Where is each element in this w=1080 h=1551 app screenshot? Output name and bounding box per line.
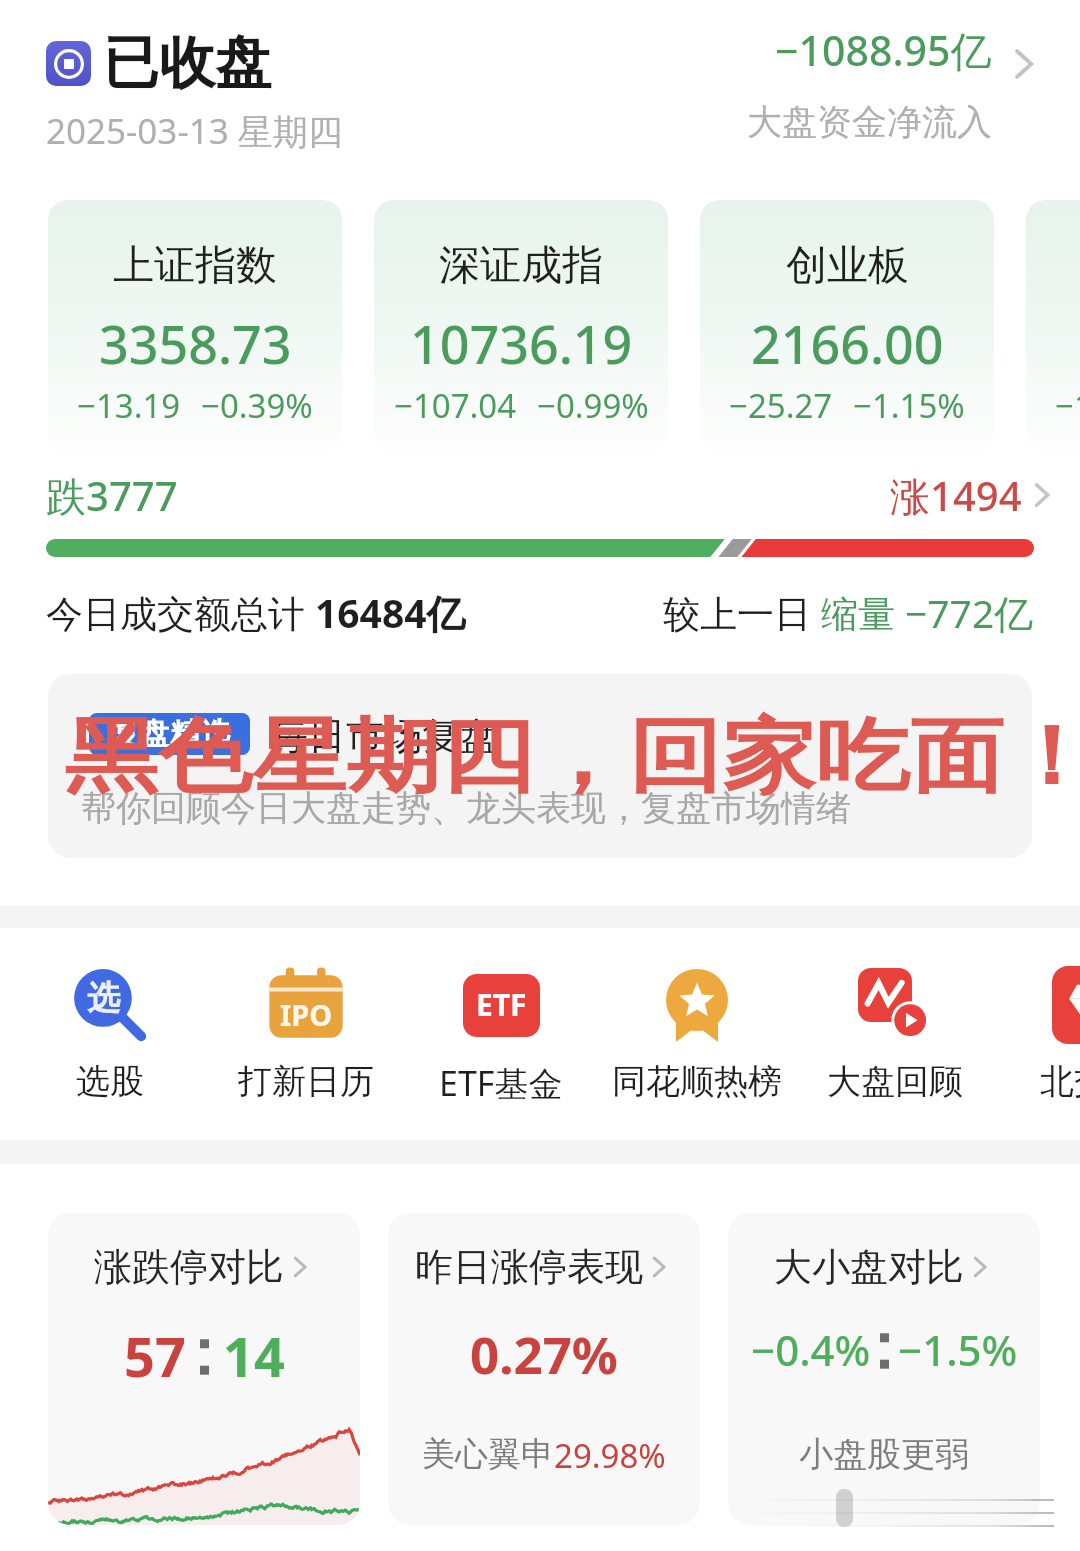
- staticText: ETF基金: [439, 1060, 563, 1106]
- staticText: 今日成交额总计: [46, 587, 315, 638]
- staticText: −772亿: [905, 586, 1034, 638]
- button[interactable]: 大盘回顾: [800, 928, 990, 1140]
- staticText: 已收盘: [103, 28, 271, 99]
- button[interactable]: 北交所: [996, 928, 1080, 1140]
- button[interactable]: 大小盘对比: [728, 1213, 1040, 1525]
- button[interactable]: 涨跌停对比: [48, 1213, 360, 1525]
- button[interactable]: IPO: [211, 928, 401, 1140]
- other: 查看大盘资金: [1004, 44, 1044, 84]
- staticText: −25.27: [729, 383, 833, 428]
- staticText: 创业板: [786, 240, 909, 292]
- staticText: 大盘回顾: [827, 1060, 963, 1103]
- staticText: 选股: [76, 1060, 144, 1103]
- staticText: 3358.73: [99, 308, 292, 379]
- button[interactable]: 创业板: [700, 200, 994, 453]
- staticText: 2166.00: [751, 308, 944, 379]
- button[interactable]: 上证指数: [48, 200, 342, 453]
- staticText: 复盘精选: [110, 715, 230, 753]
- staticText: 帮你回顾今日大盘走势、龙头表现，复盘市场情绪: [81, 786, 851, 830]
- staticText: 上证指数: [113, 240, 277, 292]
- staticText: 大小盘对比: [774, 1243, 964, 1291]
- staticText: 同花顺热榜: [612, 1060, 782, 1103]
- staticText: 北交所: [1040, 1060, 1080, 1103]
- button[interactable]: 同花顺热榜: [602, 928, 792, 1140]
- staticText: −15.30: [1055, 383, 1080, 428]
- staticText: −1088.95亿: [775, 22, 992, 78]
- staticText: −0.4%: [751, 1321, 871, 1378]
- staticText: 57: [124, 1319, 186, 1393]
- button[interactable]: 跌3777: [46, 466, 1058, 524]
- staticText: 16484亿: [315, 586, 466, 638]
- button[interactable]: 复盘精选: [48, 674, 1032, 858]
- staticText: 0.27%: [470, 1319, 618, 1388]
- staticText: 涨跌停对比: [94, 1243, 284, 1291]
- staticText: 深证成指: [439, 240, 603, 292]
- staticText: −0.99%: [537, 383, 649, 428]
- staticText: −107.04: [394, 383, 517, 428]
- staticText: 涨1494: [890, 468, 1022, 523]
- staticText: 黑色星期四，回家吃面！: [64, 706, 1080, 807]
- staticText: 小盘股更弱: [799, 1433, 969, 1476]
- staticText: 大盘资金净流入: [747, 100, 992, 144]
- staticText: 打新日历: [238, 1060, 374, 1103]
- staticText: 跌3777: [46, 468, 178, 523]
- staticText: 较上一日: [663, 587, 821, 638]
- staticText: 每日市场复盘: [270, 712, 498, 760]
- staticText: 美心翼申: [422, 1433, 554, 1475]
- staticText: −1.5%: [898, 1321, 1018, 1378]
- button[interactable]: 科创50: [1026, 200, 1080, 453]
- button[interactable]: 选: [15, 928, 205, 1140]
- staticText: 选: [87, 977, 120, 1019]
- staticText: −0.39%: [201, 383, 313, 428]
- staticText: IPO: [280, 995, 333, 1034]
- staticText: ETF: [476, 984, 527, 1025]
- staticText: 2025-03-13 星期四: [46, 107, 343, 155]
- staticText: 14: [223, 1319, 285, 1393]
- staticText: 昨日涨停表现: [415, 1243, 643, 1291]
- button[interactable]: ETF: [406, 928, 596, 1140]
- button[interactable]: 已收盘: [0, 0, 1080, 180]
- staticText: 缩量: [821, 587, 905, 638]
- staticText: 10736.19: [410, 308, 633, 379]
- button[interactable]: 深证成指: [374, 200, 668, 453]
- button[interactable]: 昨日涨停表现: [388, 1213, 700, 1525]
- staticText: −1.15%: [853, 383, 965, 428]
- staticText: 29.98%: [554, 1433, 666, 1478]
- staticText: −13.19: [77, 383, 181, 428]
